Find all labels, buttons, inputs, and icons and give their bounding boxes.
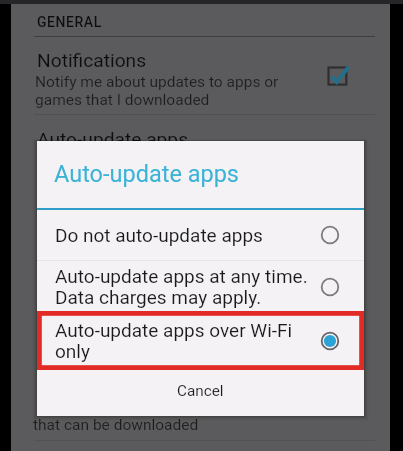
staticText: Do not auto-update apps	[55, 224, 314, 246]
staticText: Auto-update apps	[37, 128, 189, 151]
button[interactable]: Auto-update apps over Wi-Fi only	[37, 312, 364, 369]
staticText: GENERAL	[37, 14, 102, 30]
staticText: Auto-update apps over Wi-Fi only	[55, 319, 314, 363]
staticText: Auto-update apps	[54, 160, 239, 188]
staticText: Auto-update apps at any time. Data charg…	[55, 265, 314, 309]
staticText: Notifications	[37, 49, 147, 72]
staticText: Notify me about updates to apps or games…	[35, 73, 279, 108]
button[interactable]: Auto-update apps at any time. Data charg…	[37, 261, 364, 312]
button[interactable]: Notifications checkbox	[324, 63, 349, 88]
button[interactable]: Do not auto-update apps	[37, 210, 364, 260]
staticText: that can be downloaded	[33, 416, 199, 434]
button[interactable]: Cancel	[37, 367, 364, 414]
button[interactable]: Notifications	[11, 44, 390, 112]
staticText: Cancel	[177, 382, 224, 400]
